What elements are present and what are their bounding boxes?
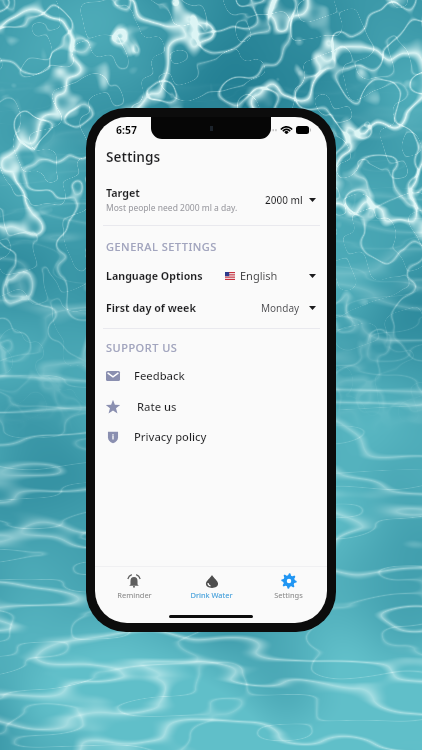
button[interactable]: Drink Water (173, 571, 250, 602)
staticText: Feedback (134, 368, 185, 383)
button[interactable]: Reminder (95, 571, 173, 602)
staticText: GENERAL SETTINGS (106, 239, 217, 254)
button[interactable]: Rate us (95, 399, 327, 414)
button[interactable]: Language Options (95, 268, 327, 283)
staticText: Most people need 2000 ml a day. (106, 202, 238, 214)
staticText: Settings (106, 147, 161, 166)
staticText: 2000 ml (265, 193, 303, 207)
other: Reminder (126, 573, 142, 589)
staticText: Target (106, 186, 140, 200)
staticText: 6:57 (116, 123, 137, 137)
other: Drink Water (204, 573, 220, 589)
button[interactable]: Privacy policy (95, 429, 327, 444)
button[interactable]: Feedback (95, 368, 327, 383)
button[interactable]: Target (95, 186, 327, 214)
button[interactable]: Settings (250, 571, 327, 602)
staticText: Language Options (106, 269, 203, 283)
other: Settings (281, 573, 297, 589)
staticText: Rate us (137, 399, 177, 414)
staticText: Drink Water (190, 590, 233, 600)
staticText: Reminder (117, 590, 152, 600)
button[interactable]: First day of week (95, 301, 327, 315)
staticText: First day of week (106, 301, 196, 315)
staticText: Monday (261, 301, 300, 315)
staticText: Privacy policy (134, 429, 207, 444)
staticText: English (240, 268, 278, 283)
staticText: Settings (274, 590, 303, 600)
staticText: SUPPORT US (106, 340, 178, 355)
